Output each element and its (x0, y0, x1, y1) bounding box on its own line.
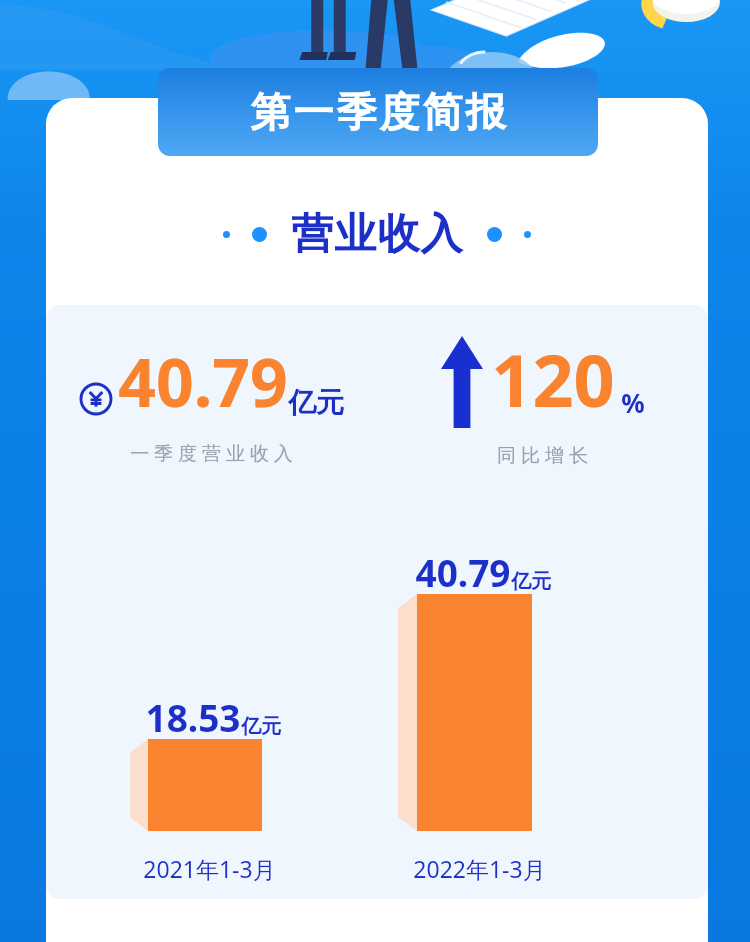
button[interactable]: 第一季度简报 (158, 68, 598, 156)
staticText: 亿元 (288, 385, 344, 420)
staticText: 第一季度简报 (249, 87, 507, 137)
staticText: 2022年1-3月 (413, 853, 546, 884)
staticText: 亿元 (241, 714, 281, 739)
staticText: 一 季 度 营 业 收 入 (130, 440, 293, 466)
staticText: 营业收入 (291, 208, 463, 261)
staticText: 40.79 (415, 547, 511, 597)
staticText: 40.79 (118, 336, 288, 426)
staticText: 2021年1-3月 (143, 853, 276, 884)
staticText: 同 比 增 长 (497, 442, 588, 468)
staticText: 亿元 (511, 569, 551, 594)
staticText: 18.53 (145, 692, 241, 742)
other: CNY (79, 382, 113, 416)
button[interactable]: CNY (46, 305, 708, 899)
staticText: 120 (491, 330, 615, 428)
other: Increase (441, 336, 483, 428)
staticText: % (621, 385, 645, 420)
